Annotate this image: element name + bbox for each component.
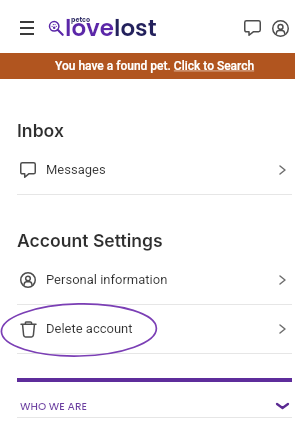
button[interactable]: Messages <box>0 145 295 194</box>
button[interactable]: Open navigation menu <box>14 15 40 41</box>
staticText: You have a found pet. Click to Search <box>55 59 255 73</box>
staticText: Messages <box>46 162 106 177</box>
staticText: petco <box>71 15 91 24</box>
staticText: lovelost <box>65 12 157 42</box>
button[interactable]: Delete account <box>0 304 295 353</box>
button[interactable]: Account <box>266 14 294 42</box>
button[interactable]: Personal information <box>0 255 295 304</box>
staticText: Inbox <box>17 120 64 141</box>
button[interactable]: WHO WE ARE <box>0 389 295 417</box>
button[interactable]: You have a found pet. Click to Search <box>0 53 295 79</box>
staticText: Delete account <box>46 321 133 336</box>
staticText: Account Settings <box>17 230 163 251</box>
staticText: WHO WE ARE <box>20 399 88 414</box>
staticText: Personal information <box>46 272 168 287</box>
button[interactable]: Messages <box>238 14 266 42</box>
